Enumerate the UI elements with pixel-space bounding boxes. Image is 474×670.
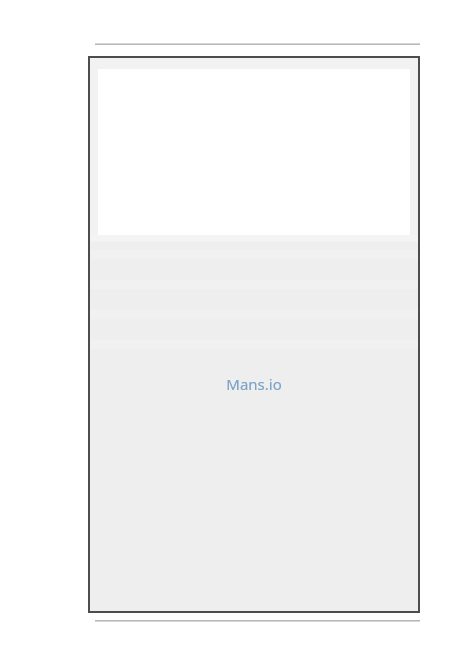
button[interactable]: Mans.io [90, 58, 418, 611]
button[interactable]: Mans.io [220, 372, 288, 396]
staticText: Mans.io [226, 374, 282, 394]
